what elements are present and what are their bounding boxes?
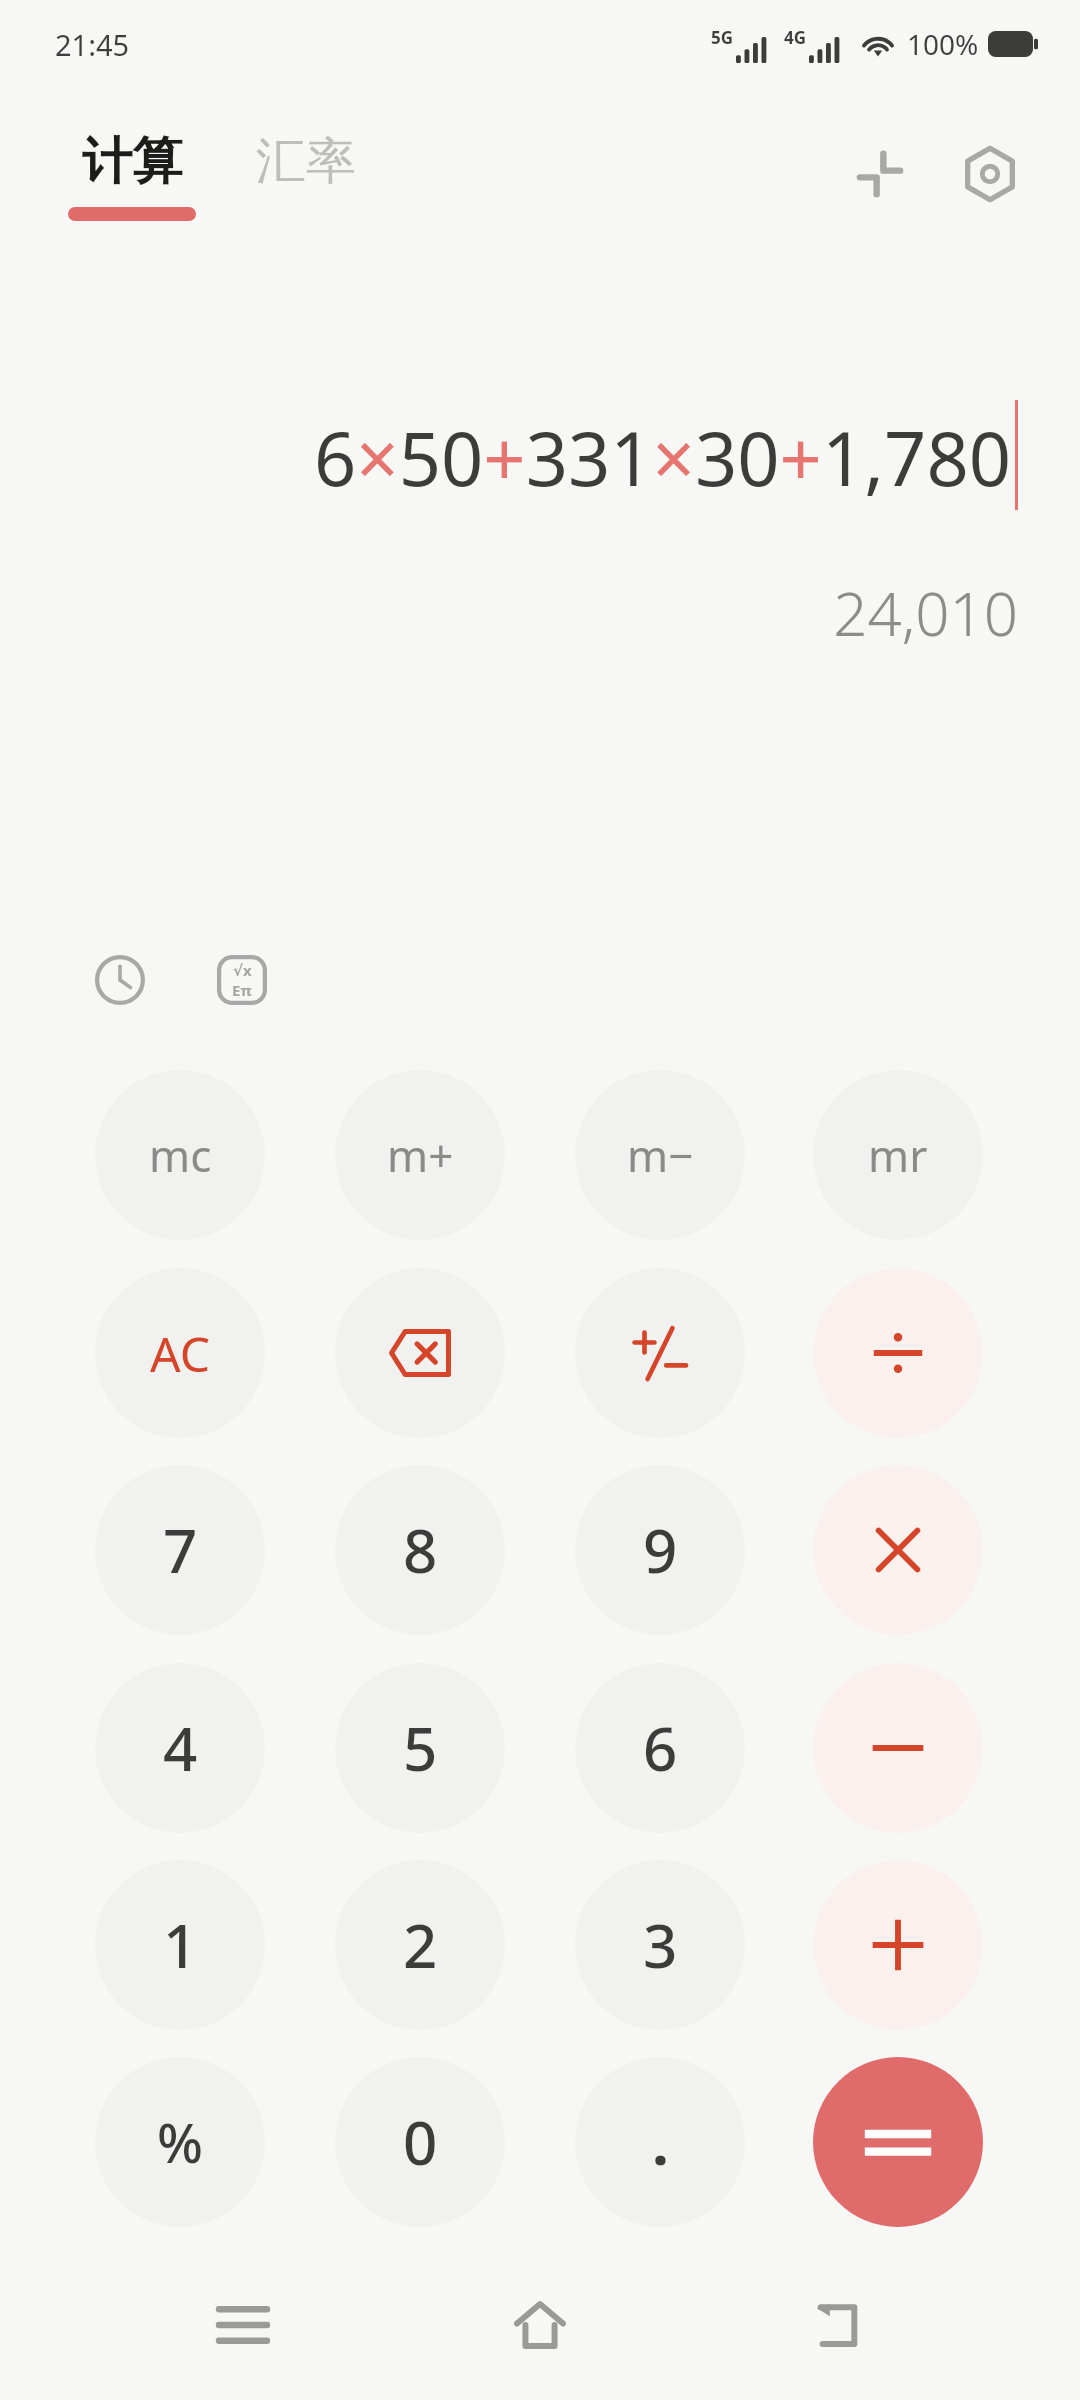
staticText: √x (233, 960, 252, 980)
button[interactable]: 汇率 (256, 130, 356, 193)
staticText: 7 (163, 1509, 198, 1591)
button[interactable]: Backspace (335, 1268, 505, 1438)
staticText: 9 (643, 1509, 678, 1591)
button[interactable]: AC (95, 1268, 265, 1438)
button[interactable]: Toggle sign (575, 1268, 745, 1438)
button[interactable]: Plus (813, 1860, 983, 2030)
button[interactable]: 0 (335, 2057, 505, 2227)
button[interactable]: Settings (948, 132, 1032, 216)
button[interactable]: Minus (813, 1663, 983, 1833)
staticText: 3 (643, 1904, 678, 1986)
staticText: AC (150, 1321, 211, 1386)
button[interactable]: Multiply (813, 1465, 983, 1635)
staticText: 5 (403, 1707, 438, 1789)
staticText: . (652, 2101, 669, 2183)
button[interactable]: 5 (335, 1663, 505, 1833)
button[interactable]: 7 (95, 1465, 265, 1635)
staticText: 24,010 (833, 572, 1018, 654)
button[interactable]: Scientific functions (200, 938, 284, 1022)
button[interactable]: Back (783, 2270, 893, 2380)
staticText: 计算 (82, 130, 182, 193)
staticText: mr (868, 1125, 928, 1185)
staticText: m+ (387, 1125, 454, 1185)
staticText: mc (149, 1125, 212, 1185)
button[interactable]: Divide (813, 1268, 983, 1438)
staticText: 8 (403, 1509, 438, 1591)
staticText: m− (627, 1125, 694, 1185)
button[interactable]: 3 (575, 1860, 745, 2030)
button[interactable]: 4 (95, 1663, 265, 1833)
button[interactable]: m+ (335, 1070, 505, 1240)
button[interactable]: m− (575, 1070, 745, 1240)
button[interactable]: . (575, 2057, 745, 2227)
button[interactable]: 8 (335, 1465, 505, 1635)
staticText: 6 (643, 1707, 678, 1789)
button[interactable]: Scientific mode (838, 132, 922, 216)
staticText: % (157, 2105, 204, 2179)
staticText: 21:45 (55, 25, 130, 64)
staticText: 1 (163, 1904, 198, 1986)
button[interactable]: Home (485, 2270, 595, 2380)
button[interactable]: 计算 (68, 130, 196, 221)
staticText: 100% (907, 25, 979, 63)
staticText: 6×50+331×30+1,780 (314, 407, 1012, 508)
button[interactable]: 2 (335, 1860, 505, 2030)
button[interactable]: 9 (575, 1465, 745, 1635)
button[interactable]: 1 (95, 1860, 265, 2030)
button[interactable]: Equals (813, 2057, 983, 2227)
staticText: 4 (163, 1707, 198, 1789)
staticText: Eπ (232, 980, 252, 1000)
button[interactable]: 6 (575, 1663, 745, 1833)
button[interactable]: mc (95, 1070, 265, 1240)
staticText: 0 (403, 2101, 438, 2183)
button[interactable]: % (95, 2057, 265, 2227)
staticText: 5G (711, 26, 734, 49)
button[interactable]: mr (813, 1070, 983, 1240)
staticText: 4G (784, 26, 807, 49)
button[interactable]: History (78, 938, 162, 1022)
button[interactable]: Recent apps (188, 2270, 298, 2380)
staticText: 汇率 (256, 130, 356, 193)
staticText: 2 (403, 1904, 438, 1986)
